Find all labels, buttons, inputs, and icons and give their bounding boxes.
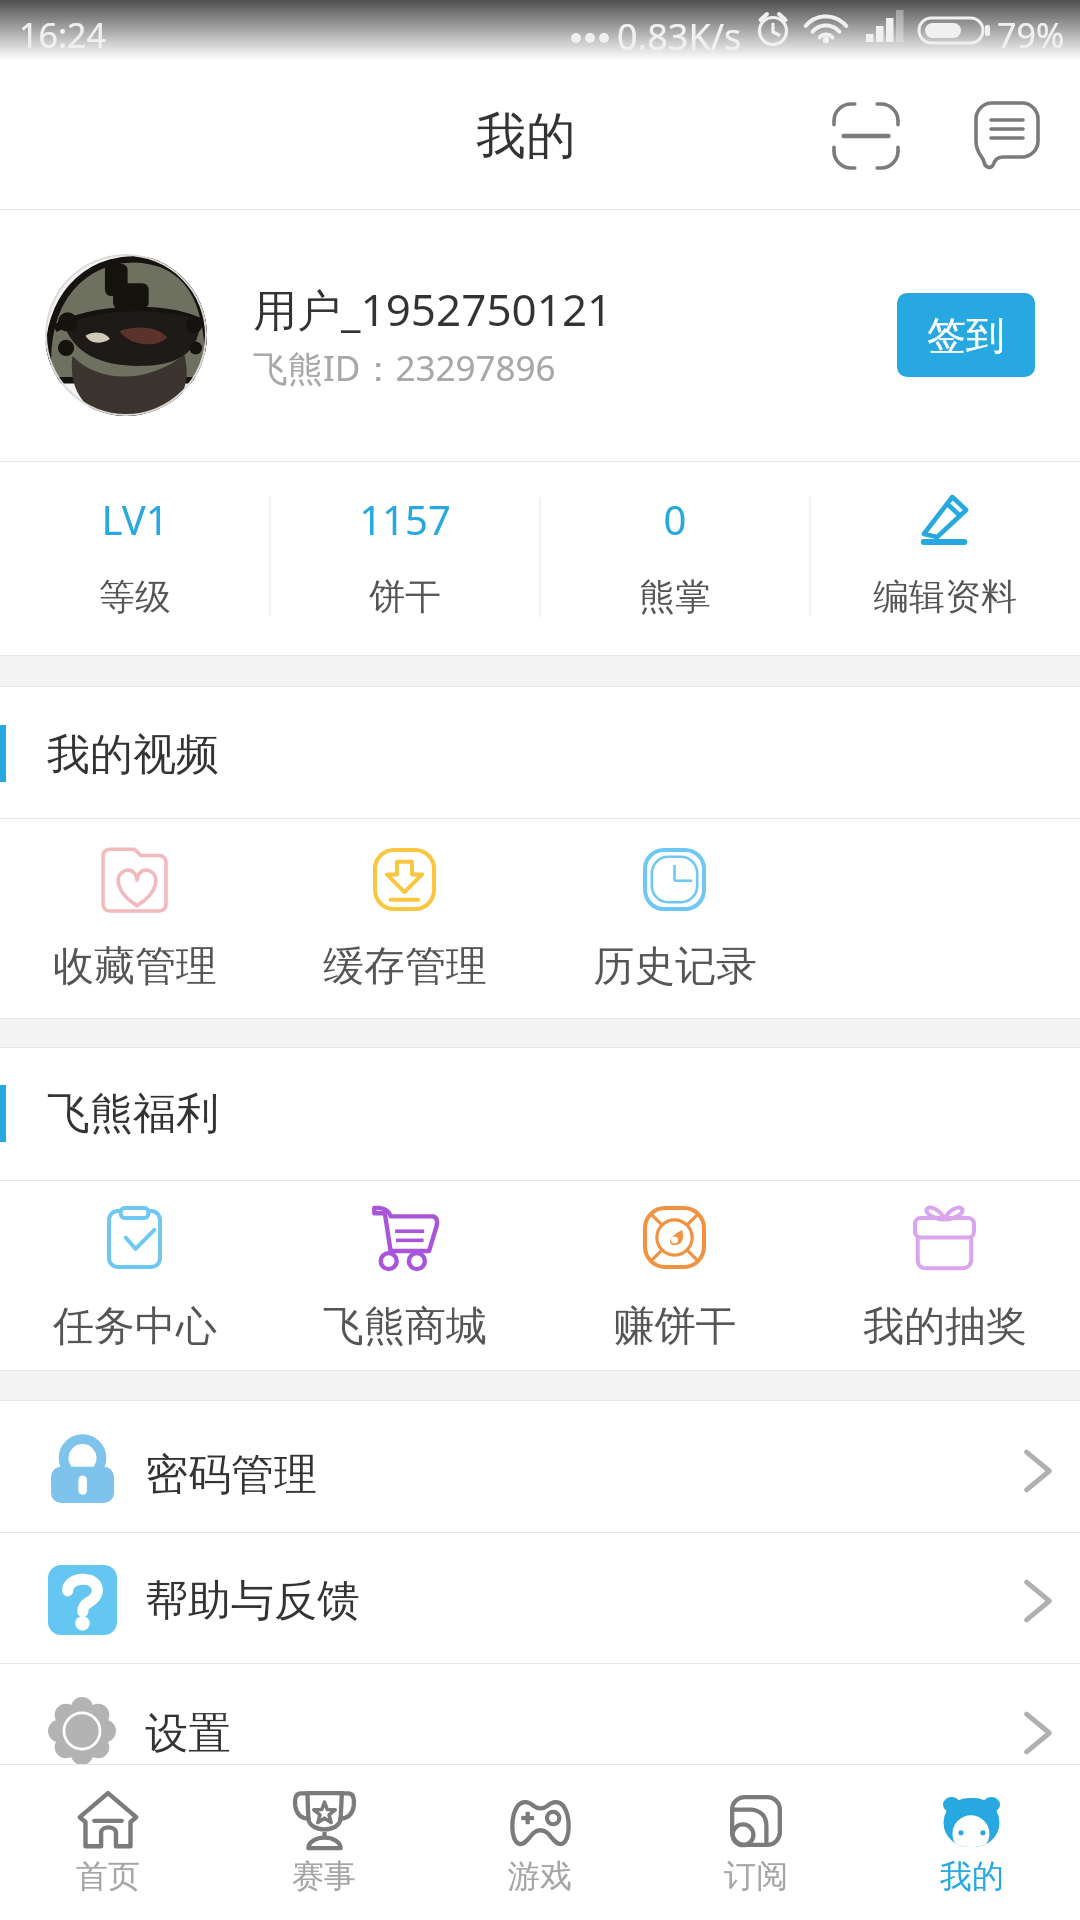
button[interactable]: 游戏: [432, 1765, 648, 1920]
staticText: 79%: [997, 12, 1065, 58]
button[interactable]: Scan QR code: [824, 94, 908, 178]
staticText: 任务中心: [0, 1301, 270, 1353]
button[interactable]: 1157: [270, 462, 540, 655]
staticText: 设置: [145, 1707, 231, 1761]
staticText: 游戏: [432, 1856, 648, 1896]
button[interactable]: 我的: [864, 1765, 1080, 1920]
staticText: 密码管理: [145, 1448, 317, 1502]
button[interactable]: 任务中心: [0, 1181, 270, 1370]
button[interactable]: 订阅: [648, 1765, 864, 1920]
button[interactable]: 我的抽奖: [810, 1181, 1080, 1370]
staticText: 编辑资料: [810, 574, 1080, 619]
staticText: 缓存管理: [270, 941, 540, 993]
staticText: LV1: [0, 492, 270, 546]
staticText: 我的视频: [47, 728, 219, 782]
button[interactable]: 用户_1952750121: [0, 210, 1080, 461]
staticText: 飞熊商城: [270, 1301, 540, 1353]
button[interactable]: 0: [540, 462, 810, 655]
staticText: 收藏管理: [0, 941, 270, 993]
staticText: 熊掌: [540, 574, 810, 619]
staticText: 赛事: [216, 1856, 432, 1896]
staticText: 我的: [864, 1856, 1080, 1896]
button[interactable]: 设置: [0, 1664, 1080, 1764]
staticText: 我的抽奖: [810, 1301, 1080, 1353]
button[interactable]: 签到: [897, 293, 1035, 377]
staticText: 饼干: [270, 574, 540, 619]
staticText: 历史记录: [540, 941, 810, 993]
button[interactable]: 赚饼干: [540, 1181, 810, 1370]
button[interactable]: 历史记录: [540, 819, 810, 1018]
staticText: 1157: [270, 492, 540, 546]
button[interactable]: 密码管理: [0, 1401, 1080, 1532]
button[interactable]: 缓存管理: [270, 819, 540, 1018]
button[interactable]: 飞熊商城: [270, 1181, 540, 1370]
button[interactable]: 编辑资料: [810, 462, 1080, 655]
staticText: 0: [540, 492, 810, 546]
staticText: 飞熊ID：23297896: [253, 344, 556, 392]
staticText: 订阅: [648, 1856, 864, 1896]
staticText: 帮助与反馈: [145, 1574, 360, 1628]
staticText: 0.83K/s: [617, 12, 742, 61]
button[interactable]: 赛事: [216, 1765, 432, 1920]
staticText: 等级: [0, 574, 270, 619]
staticText: 赚饼干: [540, 1301, 810, 1353]
button[interactable]: 帮助与反馈: [0, 1533, 1080, 1663]
button[interactable]: 收藏管理: [0, 819, 270, 1018]
staticText: 用户_1952750121: [253, 279, 613, 339]
button[interactable]: Messages: [968, 93, 1052, 177]
staticText: 我的: [476, 105, 576, 168]
staticText: 签到: [927, 311, 1005, 360]
staticText: 16:24: [19, 12, 106, 58]
staticText: 飞熊福利: [47, 1087, 219, 1141]
staticText: 首页: [0, 1856, 216, 1896]
button[interactable]: LV1: [0, 462, 270, 655]
button[interactable]: 首页: [0, 1765, 216, 1920]
